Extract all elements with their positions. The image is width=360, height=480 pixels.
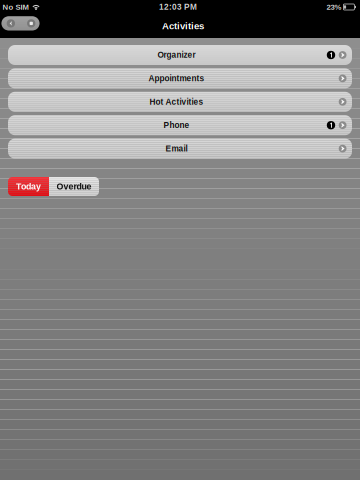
staticText: Email xyxy=(165,144,187,153)
button[interactable]: Today xyxy=(8,177,49,196)
button[interactable]: Organizer xyxy=(8,45,352,65)
button[interactable]: Overdue xyxy=(49,177,99,196)
button[interactable]: Phone xyxy=(8,115,352,135)
staticText: Today xyxy=(16,182,41,191)
staticText: Phone xyxy=(163,121,189,130)
button[interactable]: Appointments xyxy=(8,68,352,88)
staticText: No SIM xyxy=(2,3,28,11)
staticText: Hot Activities xyxy=(149,97,203,106)
button[interactable]: Hot Activities xyxy=(8,92,352,112)
staticText: Organizer xyxy=(157,50,195,60)
button[interactable]: Email xyxy=(8,139,352,159)
staticText: Appointments xyxy=(148,74,204,83)
staticText: Activities xyxy=(162,21,204,31)
staticText: 23% xyxy=(326,3,341,11)
button[interactable]: Back xyxy=(1,17,39,30)
staticText: 12:03 PM xyxy=(159,2,197,12)
staticText: Overdue xyxy=(56,182,91,191)
